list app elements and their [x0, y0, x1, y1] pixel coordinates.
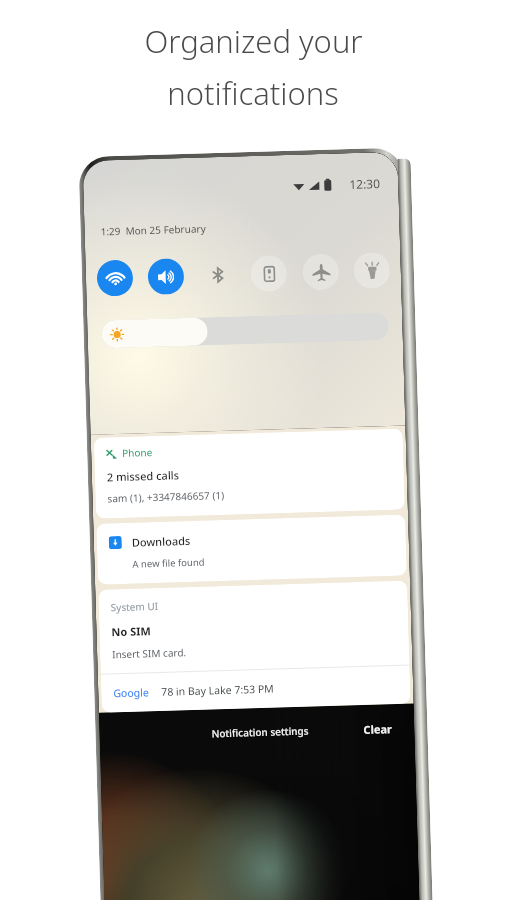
button[interactable]: Google	[101, 665, 411, 713]
staticText: No SIM	[111, 623, 152, 639]
staticText: sam (1), +3347846657 (1)	[107, 488, 225, 505]
staticText: 1:29 Mon 25 February	[100, 221, 207, 238]
button[interactable]: System UI	[98, 580, 411, 713]
staticText: System UI	[110, 599, 159, 614]
staticText: Organized your	[144, 20, 363, 62]
button[interactable]: Wi-Fi	[96, 259, 133, 297]
button[interactable]: Auto rotate	[250, 255, 287, 292]
staticText: Phone	[122, 445, 153, 460]
button[interactable]: Bluetooth	[199, 256, 236, 294]
staticText: 78 in Bay Lake 7:53 PM	[161, 681, 274, 699]
staticText: 2 missed calls	[107, 467, 180, 484]
staticText: Clear	[363, 721, 393, 737]
staticText: A new file found	[132, 555, 206, 571]
staticText: Insert SIM card.	[112, 645, 187, 661]
button[interactable]: Airplane mode	[302, 253, 339, 290]
button[interactable]: Flashlight	[353, 252, 390, 289]
button[interactable]: Brightness	[101, 312, 389, 348]
staticText: notifications	[167, 72, 339, 114]
button[interactable]: Phone	[94, 429, 405, 519]
button[interactable]: Sound	[147, 258, 184, 295]
button[interactable]: Clear	[357, 715, 399, 743]
button[interactable]: Downloads	[96, 515, 407, 585]
button[interactable]: Notification settings	[205, 717, 316, 747]
staticText: Notification settings	[211, 723, 310, 740]
staticText: 12:30	[349, 175, 380, 192]
staticText: Downloads	[132, 533, 191, 550]
staticText: Google	[113, 685, 149, 700]
